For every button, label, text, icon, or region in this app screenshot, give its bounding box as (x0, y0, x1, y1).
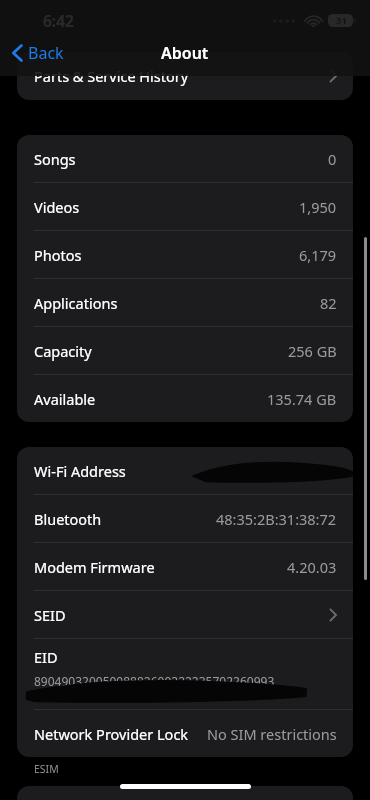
button[interactable]: Bluetooth (17, 495, 353, 542)
staticText: SEID (34, 605, 66, 625)
button[interactable]: Parts & Service History (17, 52, 353, 100)
staticText: Available (34, 389, 96, 409)
button[interactable]: Modem Firmware (17, 543, 353, 590)
staticText: Songs (34, 149, 76, 169)
staticText: Parts & Service History (34, 66, 189, 86)
button[interactable]: Photos (17, 231, 353, 278)
staticText: 0 (328, 149, 337, 169)
staticText: 1,950 (299, 197, 337, 217)
staticText: Network Provider Lock (34, 724, 189, 744)
staticText: 31 (336, 14, 347, 27)
staticText: 89049032005008882600222235702260993 (34, 673, 275, 689)
staticText: 6,179 (299, 245, 337, 265)
staticText: 48:35:2B:31:38:72 (216, 509, 337, 529)
button[interactable]: SEID (17, 591, 353, 638)
staticText: 256 GB (288, 341, 337, 361)
staticText: Modem Firmware (34, 557, 155, 577)
staticText: ESIM (34, 762, 59, 776)
button[interactable]: Network Provider Lock (17, 710, 353, 757)
button[interactable]: Available (17, 375, 353, 422)
button[interactable]: EID (17, 639, 353, 709)
staticText: 4.20.03 (287, 557, 337, 577)
button[interactable]: Videos (17, 183, 353, 230)
staticText: 82 (320, 293, 337, 313)
button[interactable]: Wi-Fi Address (17, 447, 353, 494)
button[interactable]: Applications (17, 279, 353, 326)
staticText: Photos (34, 245, 82, 265)
button[interactable]: Capacity (17, 327, 353, 374)
staticText: Back (28, 42, 64, 64)
button[interactable]: Songs (17, 135, 353, 182)
button[interactable]: Back (8, 38, 68, 68)
staticText: Videos (34, 197, 80, 217)
staticText: 48:35:2B:27:0B:1F (216, 461, 337, 481)
staticText: No SIM restrictions (207, 724, 337, 744)
staticText: Bluetooth (34, 509, 102, 529)
staticText: 6:42 (43, 10, 74, 31)
staticText: Applications (34, 293, 118, 313)
staticText: 135.74 GB (267, 389, 337, 409)
staticText: Capacity (34, 341, 92, 361)
staticText: About (161, 42, 209, 64)
staticText: Wi-Fi Address (34, 461, 126, 481)
staticText: EID (34, 647, 58, 667)
